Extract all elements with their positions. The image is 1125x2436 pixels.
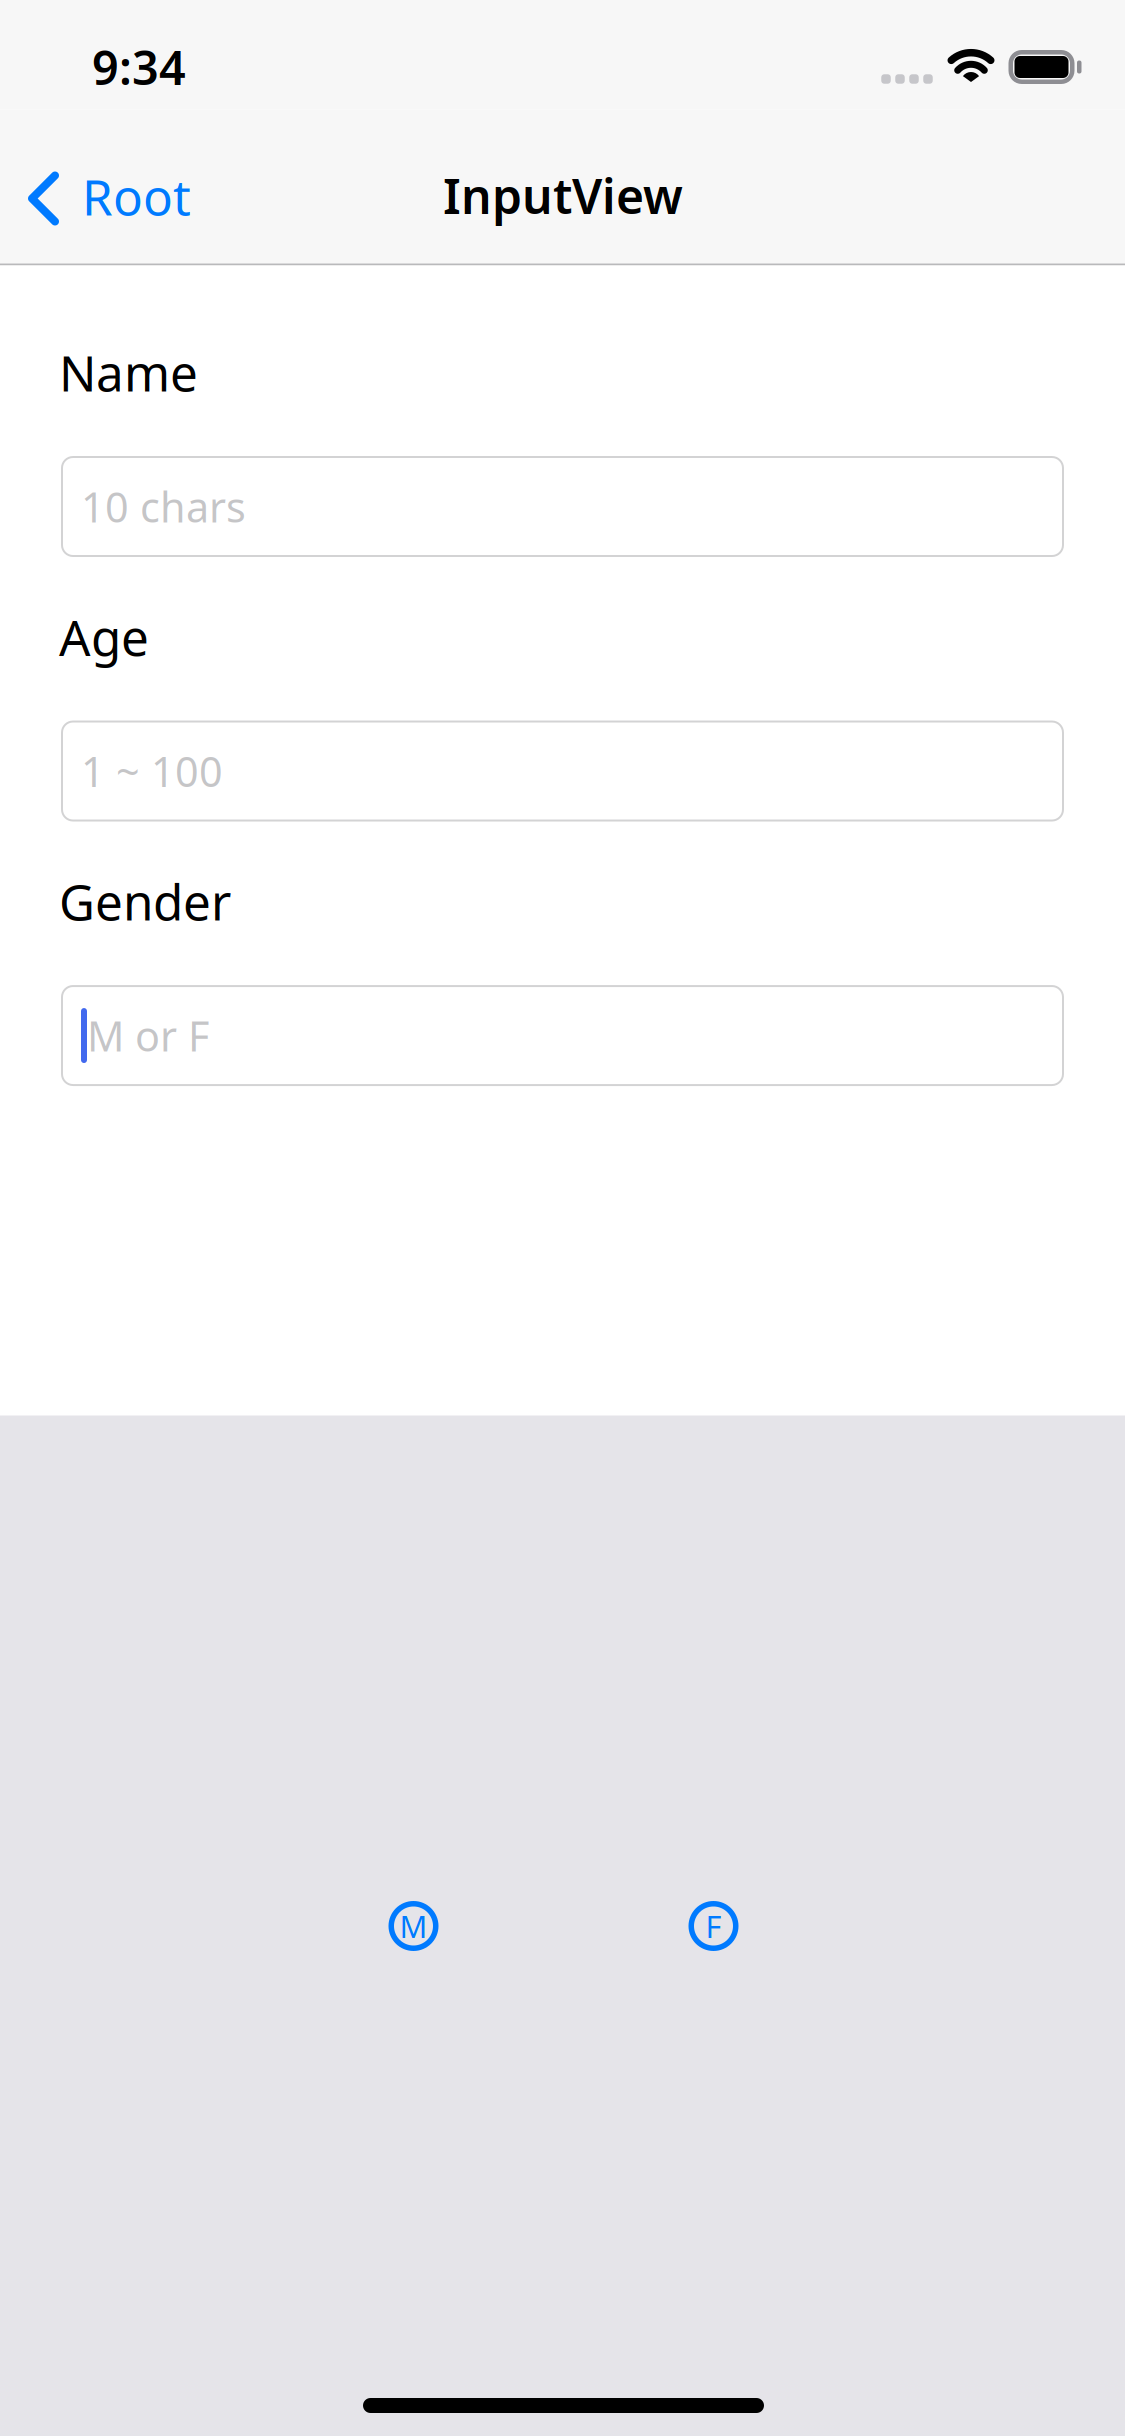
button[interactable]: Male bbox=[388, 1901, 438, 1951]
button[interactable]: M or F bbox=[61, 985, 1064, 1086]
button[interactable]: 10 chars bbox=[61, 456, 1064, 557]
staticText: 9:34 bbox=[92, 36, 186, 98]
staticText: Name bbox=[59, 339, 198, 405]
staticText: Root bbox=[82, 163, 191, 229]
staticText: F bbox=[705, 1906, 721, 1946]
staticText: InputView bbox=[443, 164, 683, 227]
button[interactable]: Female bbox=[688, 1901, 738, 1951]
staticText: Age bbox=[59, 604, 149, 669]
button[interactable]: Root bbox=[0, 109, 230, 263]
button[interactable]: 1 ~ 100 bbox=[61, 720, 1064, 821]
staticText: Gender bbox=[59, 868, 231, 934]
staticText: M or F bbox=[87, 1008, 209, 1063]
staticText: M bbox=[399, 1906, 427, 1946]
staticText: 10 chars bbox=[81, 479, 246, 534]
staticText: 1 ~ 100 bbox=[81, 744, 223, 798]
